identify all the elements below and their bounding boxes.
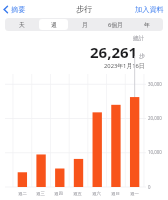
staticText: 步 [139,52,145,60]
staticText: 週一 [130,191,139,197]
staticText: 週四 [54,191,63,197]
button[interactable]: 30,000 [0,70,168,200]
staticText: 加入資料 [135,5,164,14]
staticText: 10,000 [148,149,162,155]
staticText: 6個月 [108,21,123,29]
staticText: 週 [51,21,57,28]
button[interactable]: 月 [70,19,99,30]
staticText: 30,000 [148,81,162,87]
staticText: 週五 [73,191,82,197]
staticText: 年 [144,21,150,28]
staticText: 2023年1月16日 [104,62,145,70]
staticText: 週六 [92,191,101,197]
staticText: 週三 [36,191,45,197]
button[interactable]: 週 [39,19,68,30]
staticText: 0 [148,184,151,190]
button[interactable]: 天 [7,19,37,30]
staticText: 摘要 [11,5,26,14]
staticText: 週二 [18,191,27,197]
button[interactable]: Back to 摘要 [0,2,31,17]
button[interactable]: 加入資料 [131,2,168,17]
staticText: 20,000 [148,115,162,121]
staticText: 26,261 [90,42,138,62]
staticText: 週日 [111,191,120,197]
staticText: 總計 [133,35,145,42]
staticText: 步行 [76,4,93,14]
button[interactable]: 年 [132,19,161,30]
staticText: 天 [19,21,25,28]
button[interactable]: 6個月 [101,19,130,30]
staticText: 月 [82,21,88,28]
